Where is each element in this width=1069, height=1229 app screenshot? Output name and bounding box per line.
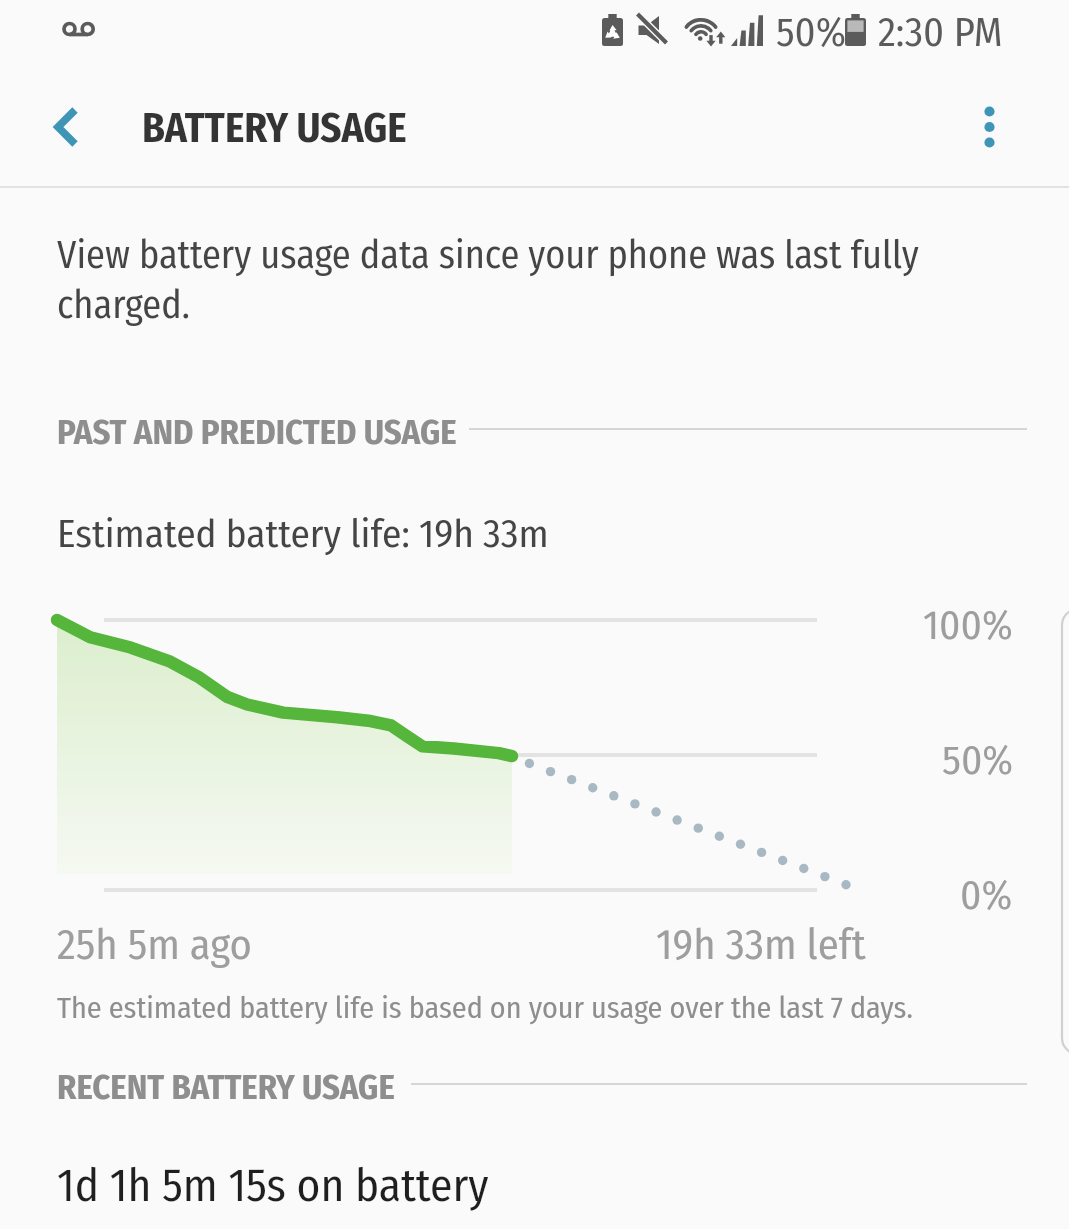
- staticText: 100%: [923, 600, 1013, 649]
- staticText: PAST AND PREDICTED USAGE: [57, 412, 457, 453]
- staticText: The estimated battery life is based on y…: [57, 990, 913, 1026]
- staticText: 1d 1h 5m 15s on battery: [57, 1159, 489, 1213]
- staticText: 50%: [776, 8, 846, 57]
- staticText: BATTERY USAGE: [142, 104, 407, 153]
- staticText: 25h 5m ago: [57, 919, 252, 970]
- staticText: RECENT BATTERY USAGE: [57, 1067, 395, 1108]
- staticText: 2:30 PM: [878, 8, 1003, 57]
- staticText: 19h 33m left: [656, 919, 866, 970]
- staticText: View battery usage data since your phone…: [57, 232, 919, 278]
- staticText: 0%: [960, 870, 1013, 919]
- staticText: 50%: [942, 735, 1014, 784]
- button[interactable]: Navigate up: [22, 84, 108, 170]
- staticText: Estimated battery life: 19h 33m: [57, 510, 549, 557]
- staticText: charged.: [57, 282, 190, 328]
- button[interactable]: More options: [946, 84, 1032, 170]
